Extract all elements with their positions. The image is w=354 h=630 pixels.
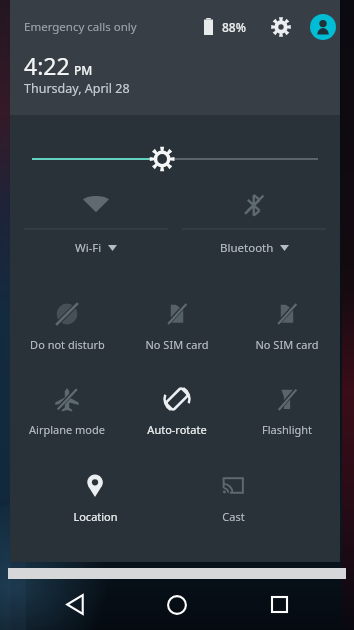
button[interactable]: Cast bbox=[184, 467, 282, 537]
button[interactable]: No SIM card bbox=[238, 295, 336, 365]
staticText: PM bbox=[74, 62, 93, 78]
staticText: Flashlight bbox=[262, 422, 312, 437]
button[interactable]: Airplane mode bbox=[18, 380, 116, 450]
staticText: Location bbox=[73, 509, 118, 524]
button[interactable]: No SIM card bbox=[128, 295, 226, 365]
button[interactable]: Do not disturb bbox=[18, 295, 116, 365]
button[interactable]: Wi-Fi bbox=[24, 187, 168, 269]
button[interactable]: Auto-rotate bbox=[128, 380, 226, 450]
staticText: Wi-Fi bbox=[75, 240, 102, 256]
button[interactable]: Recent apps bbox=[252, 579, 306, 630]
staticText: Do not disturb bbox=[30, 337, 105, 352]
button[interactable]: Home bbox=[150, 579, 204, 630]
staticText: Cast bbox=[222, 509, 245, 524]
staticText: 4:22 bbox=[24, 50, 70, 81]
staticText: Bluetooth bbox=[220, 240, 274, 256]
staticText: Auto-rotate bbox=[147, 422, 207, 437]
button[interactable]: Bluetooth bbox=[182, 187, 326, 269]
button[interactable]: Flashlight bbox=[238, 380, 336, 450]
staticText: Thursday, April 28 bbox=[24, 80, 130, 97]
staticText: No SIM card bbox=[255, 337, 319, 352]
button[interactable]: Brightness bbox=[20, 142, 330, 176]
staticText: Airplane mode bbox=[29, 422, 105, 437]
button[interactable]: User profile bbox=[310, 14, 336, 40]
staticText: 88% bbox=[222, 19, 246, 35]
staticText: Emergency calls only bbox=[24, 19, 137, 35]
button[interactable]: Location bbox=[46, 467, 144, 537]
button[interactable]: Settings bbox=[268, 14, 294, 40]
staticText: No SIM card bbox=[145, 337, 209, 352]
button[interactable]: Back bbox=[48, 579, 102, 630]
